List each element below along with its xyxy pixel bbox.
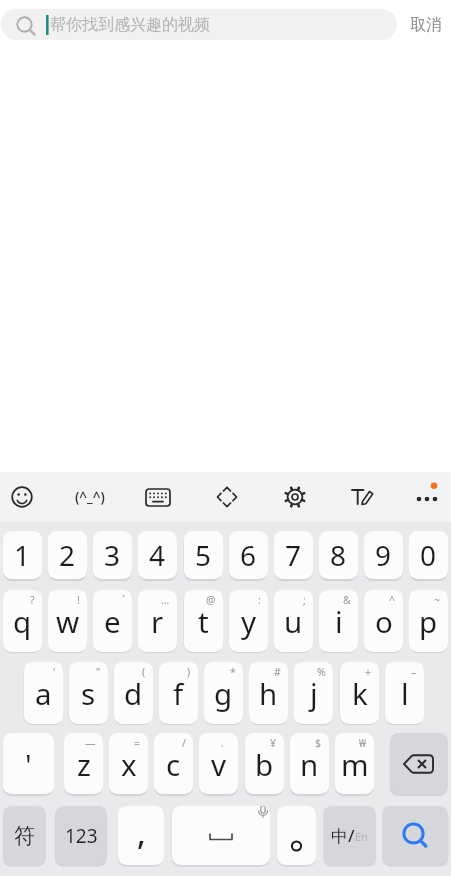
- staticText: En: [355, 829, 368, 844]
- button[interactable]: h: [249, 662, 288, 724]
- button[interactable]: a: [24, 662, 63, 724]
- button[interactable]: g: [204, 662, 243, 724]
- button[interactable]: 2: [48, 531, 87, 579]
- button[interactable]: k: [340, 662, 379, 724]
- button[interactable]: [203, 472, 251, 522]
- button[interactable]: u: [274, 590, 313, 652]
- staticText: &: [343, 593, 351, 607]
- staticText: k: [352, 673, 368, 713]
- button[interactable]: ,: [118, 806, 164, 865]
- staticText: 5: [195, 536, 212, 574]
- staticText: q: [13, 601, 32, 641]
- staticText: 3: [104, 536, 121, 574]
- button[interactable]: 符: [3, 806, 46, 865]
- button[interactable]: o: [364, 590, 403, 652]
- staticText: /: [182, 736, 186, 750]
- button[interactable]: c: [154, 733, 193, 794]
- staticText: ,: [137, 811, 146, 855]
- button[interactable]: [403, 472, 451, 522]
- staticText: z: [77, 744, 91, 784]
- staticText: y: [241, 601, 257, 641]
- button[interactable]: 9: [364, 531, 403, 579]
- staticText: #: [274, 665, 281, 679]
- staticText: o: [375, 601, 393, 641]
- button[interactable]: 0: [409, 531, 448, 579]
- staticText: 1: [14, 536, 31, 574]
- staticText: ₩: [359, 736, 367, 750]
- button[interactable]: z: [64, 733, 103, 794]
- staticText: @: [206, 593, 216, 607]
- staticText: *: [230, 665, 236, 679]
- staticText: j: [310, 673, 318, 713]
- staticText: f: [173, 673, 184, 713]
- button[interactable]: 中/: [323, 806, 376, 865]
- button[interactable]: v: [199, 733, 238, 794]
- button[interactable]: r: [138, 590, 177, 652]
- staticText: ": [96, 665, 101, 679]
- button[interactable]: [134, 472, 182, 522]
- staticText: 0: [420, 536, 437, 574]
- staticText: e: [104, 601, 121, 641]
- staticText: v: [211, 744, 226, 784]
- button[interactable]: 7: [274, 531, 313, 579]
- staticText: $: [315, 736, 322, 750]
- staticText: 、: [220, 736, 231, 749]
- button[interactable]: 6: [229, 531, 268, 579]
- button[interactable]: 取消: [400, 9, 451, 40]
- staticText: 9: [375, 536, 392, 574]
- button[interactable]: [277, 806, 316, 865]
- button[interactable]: 3: [93, 531, 132, 579]
- button[interactable]: x: [109, 733, 148, 794]
- button[interactable]: q: [3, 590, 42, 652]
- staticText: 7: [285, 536, 302, 574]
- button[interactable]: b: [245, 733, 284, 794]
- button[interactable]: e: [93, 590, 132, 652]
- staticText: s: [81, 673, 96, 713]
- button[interactable]: [0, 472, 46, 522]
- staticText: x: [121, 744, 137, 784]
- button[interactable]: (^_^): [66, 472, 114, 522]
- button[interactable]: ': [3, 733, 54, 794]
- button[interactable]: j: [294, 662, 333, 724]
- staticText: ?: [30, 593, 35, 607]
- staticText: +: [365, 665, 372, 679]
- staticText: h: [259, 673, 278, 713]
- staticText: 中/: [331, 824, 355, 847]
- staticText: w: [56, 601, 80, 641]
- button[interactable]: 123: [55, 806, 107, 865]
- button[interactable]: w: [48, 590, 87, 652]
- button[interactable]: 帮你找到感兴趣的视频: [1, 9, 397, 40]
- staticText: :: [258, 593, 261, 607]
- button[interactable]: p: [409, 590, 448, 652]
- staticText: ): [187, 665, 191, 679]
- button[interactable]: i: [319, 590, 358, 652]
- button[interactable]: f: [159, 662, 198, 724]
- staticText: g: [214, 673, 233, 713]
- button[interactable]: 1: [3, 531, 42, 579]
- button[interactable]: [339, 472, 387, 522]
- button[interactable]: [382, 806, 448, 865]
- button[interactable]: t: [184, 590, 223, 652]
- staticText: t: [198, 601, 209, 641]
- button[interactable]: y: [229, 590, 268, 652]
- button[interactable]: m: [335, 733, 374, 794]
- button[interactable]: [271, 472, 319, 522]
- staticText: !: [77, 593, 80, 607]
- button[interactable]: 8: [319, 531, 358, 579]
- staticText: `: [122, 593, 125, 607]
- button[interactable]: 4: [138, 531, 177, 579]
- staticText: n: [300, 744, 319, 784]
- button[interactable]: s: [69, 662, 108, 724]
- staticText: 符: [14, 823, 35, 849]
- button[interactable]: [172, 806, 270, 865]
- staticText: %: [317, 665, 326, 679]
- button[interactable]: d: [114, 662, 153, 724]
- button[interactable]: 5: [184, 531, 223, 579]
- button[interactable]: l: [385, 662, 424, 724]
- button[interactable]: n: [290, 733, 329, 794]
- staticText: 4: [149, 536, 166, 574]
- staticText: ¥: [270, 736, 277, 750]
- button[interactable]: [390, 733, 448, 794]
- staticText: r: [151, 601, 164, 641]
- staticText: p: [419, 601, 438, 641]
